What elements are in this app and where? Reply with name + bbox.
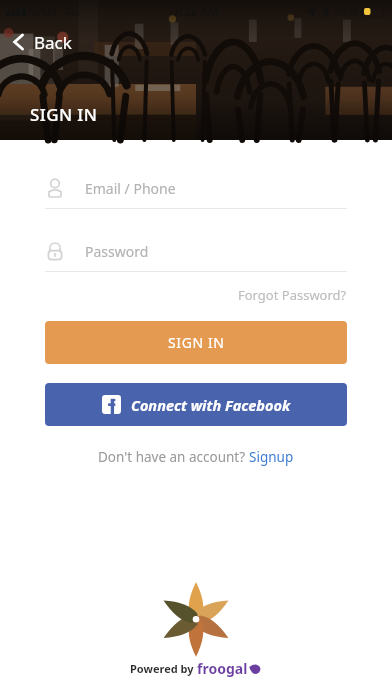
staticText: SIGN IN [168,333,225,352]
staticText: froogal [197,659,248,678]
staticText: Connect with Facebook [131,395,291,415]
button[interactable]: SIGN IN [45,321,347,364]
staticText: Don't have an account? [98,448,249,466]
staticText: Airtel [27,3,57,19]
staticText: 4G [64,3,80,19]
button[interactable]: Connect with Facebook [45,383,347,426]
staticText: Back [34,31,72,54]
button[interactable]: Email / Phone [45,168,347,208]
staticText: SIGN IN [30,103,98,126]
staticText: Powered by [130,661,197,676]
staticText: Password [85,242,149,261]
button[interactable]: Signup [249,448,294,466]
button[interactable]: Back [8,22,72,62]
staticText: Email / Phone [85,179,176,198]
staticText: 38% [334,3,358,19]
button[interactable]: Forgot Password? [238,283,347,307]
staticText: 7:22 AM [173,3,219,19]
button[interactable]: Password [45,231,347,271]
